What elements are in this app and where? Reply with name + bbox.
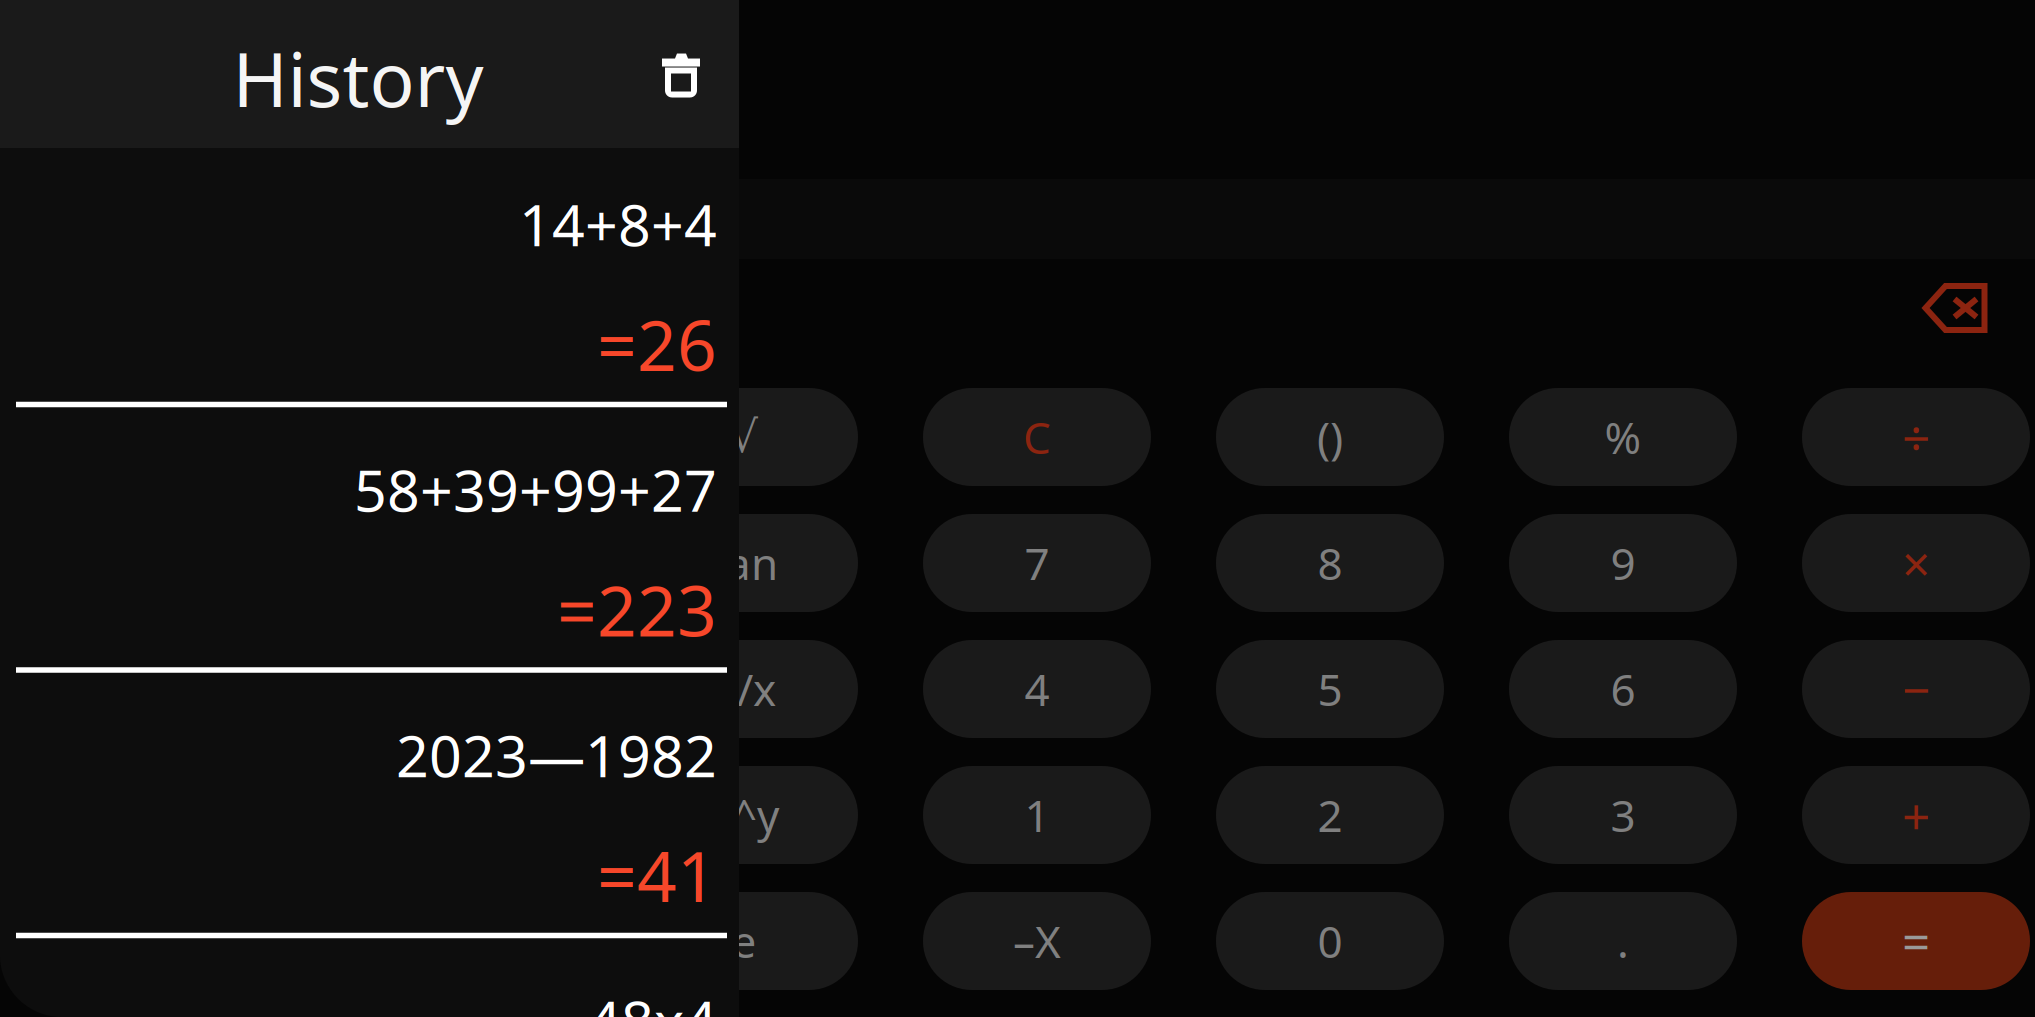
staticText: ×	[1902, 530, 1930, 596]
staticText: 8	[1317, 534, 1342, 592]
staticText: C	[1023, 408, 1051, 466]
button[interactable]: ×	[1802, 514, 2030, 612]
button[interactable]: ()	[1216, 388, 1444, 486]
staticText: −	[1902, 656, 1930, 722]
staticText: 6	[1610, 660, 1635, 718]
staticText: 1/x	[712, 660, 776, 718]
staticText: –X	[1013, 912, 1061, 970]
staticText: =	[1902, 908, 1930, 974]
button[interactable]: √	[630, 388, 858, 486]
button[interactable]: Delete	[1895, 258, 2015, 358]
staticText: +	[1902, 782, 1930, 848]
button[interactable]: 14+8+4	[0, 148, 739, 413]
button[interactable]: 8	[1216, 514, 1444, 612]
button[interactable]: –X	[923, 892, 1151, 990]
button[interactable]: 6	[1509, 640, 1737, 738]
button[interactable]: −	[1802, 640, 2030, 738]
button[interactable]: 58+39+99+27	[0, 413, 739, 679]
staticText: 58+39+99+27	[354, 451, 717, 527]
staticText: 0	[1317, 912, 1342, 970]
button[interactable]: 7	[923, 514, 1151, 612]
staticText: tan	[710, 534, 778, 592]
staticText: 2	[1317, 786, 1342, 844]
button[interactable]: =	[1802, 892, 2030, 990]
staticText: 4	[1024, 660, 1049, 718]
staticText: =26	[597, 298, 717, 390]
button[interactable]: 1	[923, 766, 1151, 864]
button[interactable]: 1/x	[630, 640, 858, 738]
staticText: %	[1604, 408, 1641, 466]
staticText: History	[232, 28, 483, 128]
staticText: =223	[557, 563, 717, 656]
staticText: =41	[597, 829, 717, 921]
button[interactable]: 0	[1216, 892, 1444, 990]
button[interactable]: 2	[1216, 766, 1444, 864]
button[interactable]: +	[1802, 766, 2030, 864]
staticText: ()	[1317, 408, 1343, 466]
button[interactable]: %	[1509, 388, 1737, 486]
button[interactable]: 48x4	[0, 944, 739, 1017]
button[interactable]: 9	[1509, 514, 1737, 612]
staticText: x^y	[709, 786, 779, 844]
staticText: 14+8+4	[519, 186, 717, 262]
staticText: e	[731, 912, 756, 970]
button[interactable]: C	[923, 388, 1151, 486]
button[interactable]: 2023—1982	[0, 679, 739, 944]
staticText: 1	[1024, 786, 1049, 844]
staticText: 5	[1317, 660, 1342, 718]
button[interactable]: .	[1509, 892, 1737, 990]
button[interactable]: 5	[1216, 640, 1444, 738]
button[interactable]: ÷	[1802, 388, 2030, 486]
staticText: √	[730, 412, 758, 462]
button[interactable]: x^y	[630, 766, 858, 864]
button[interactable]: e	[630, 892, 858, 990]
button[interactable]: Clear history	[631, 26, 731, 126]
staticText: .	[1617, 912, 1629, 970]
button[interactable]: 4	[923, 640, 1151, 738]
staticText: ÷	[1902, 404, 1930, 470]
button[interactable]: tan	[630, 514, 858, 612]
staticText: 2023—1982	[396, 717, 717, 793]
button[interactable]: 3	[1509, 766, 1737, 864]
staticText: 48x4	[588, 982, 717, 1017]
staticText: 9	[1610, 534, 1635, 592]
staticText: 3	[1610, 786, 1635, 844]
staticText: 7	[1024, 534, 1049, 592]
